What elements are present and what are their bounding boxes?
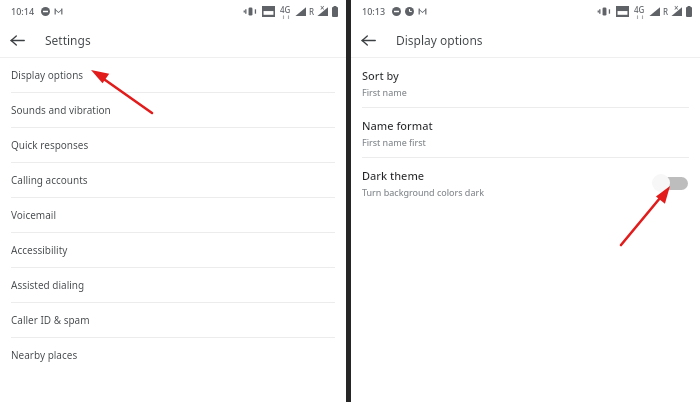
staticText: 10:14 [11,5,35,17]
staticText: Settings [45,32,91,48]
staticText: Assisted dialing [11,278,85,292]
staticText: × [320,2,325,13]
staticText: Nearby places [11,348,78,362]
staticText: R [309,6,315,17]
other: Dark theme toggle [649,170,689,196]
button[interactable]: Name format [351,108,700,158]
staticText: Dark theme [362,168,425,183]
staticText: Sort by [362,68,399,83]
button[interactable]: Voicemail [0,198,346,233]
staticText: Accessibility [11,243,68,257]
button[interactable]: Calling accounts [0,163,346,198]
button[interactable]: Dark theme [351,158,700,207]
button[interactable]: Caller ID & spam [0,303,346,338]
staticText: Display options [11,68,84,82]
button[interactable]: Display options [0,58,346,93]
staticText: First name [362,86,407,98]
staticText: Voicemail [11,208,56,222]
staticText: Quick responses [11,138,89,152]
staticText: Sounds and vibration [11,103,111,117]
button[interactable]: Navigate up [0,23,34,57]
staticText: R [663,6,669,17]
staticText: Name format [362,118,433,133]
button[interactable]: Accessibility [0,233,346,268]
staticText: 4G [634,4,645,15]
button[interactable]: Nearby places [0,338,346,372]
staticText: First name first [362,136,426,148]
staticText: Caller ID & spam [11,313,90,327]
staticText: Turn background colors dark [362,186,484,198]
button[interactable]: Assisted dialing [0,268,346,303]
button[interactable]: Sounds and vibration [0,93,346,128]
staticText: Display options [396,32,483,48]
staticText: 4G [280,4,291,15]
staticText: 10:13 [362,5,386,17]
button[interactable]: Navigate up [351,23,385,57]
button[interactable]: Sort by [351,58,700,108]
button[interactable]: Quick responses [0,128,346,163]
staticText: Calling accounts [11,173,88,187]
staticText: × [674,2,679,13]
